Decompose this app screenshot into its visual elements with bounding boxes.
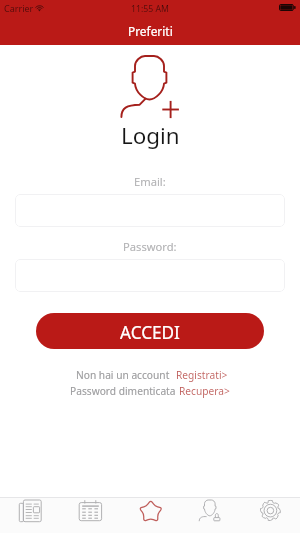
staticText: Carrier (4, 2, 34, 14)
button[interactable]: Password field (15, 259, 285, 292)
staticText: Preferiti (128, 23, 173, 39)
staticText: Login (121, 120, 180, 151)
button[interactable]: Calendar (60, 497, 120, 533)
button[interactable]: Registrati> (176, 368, 228, 382)
button[interactable]: Settings (240, 497, 300, 533)
button[interactable]: Email field (15, 194, 285, 227)
staticText: Email: (134, 174, 166, 189)
staticText: Password: (123, 239, 177, 254)
button[interactable]: Favourites (120, 497, 180, 533)
button[interactable]: Account (180, 497, 240, 533)
staticText: Password dimenticata (70, 384, 176, 398)
staticText: Recupera> (179, 384, 230, 398)
button[interactable]: Recupera> (179, 384, 230, 398)
staticText: Non hai un account (76, 368, 170, 382)
staticText: Registrati> (176, 368, 228, 382)
staticText: 11:55 AM (131, 3, 169, 15)
button[interactable]: ACCEDI (36, 313, 264, 349)
staticText: ACCEDI (120, 321, 180, 344)
button[interactable]: News (0, 497, 60, 533)
